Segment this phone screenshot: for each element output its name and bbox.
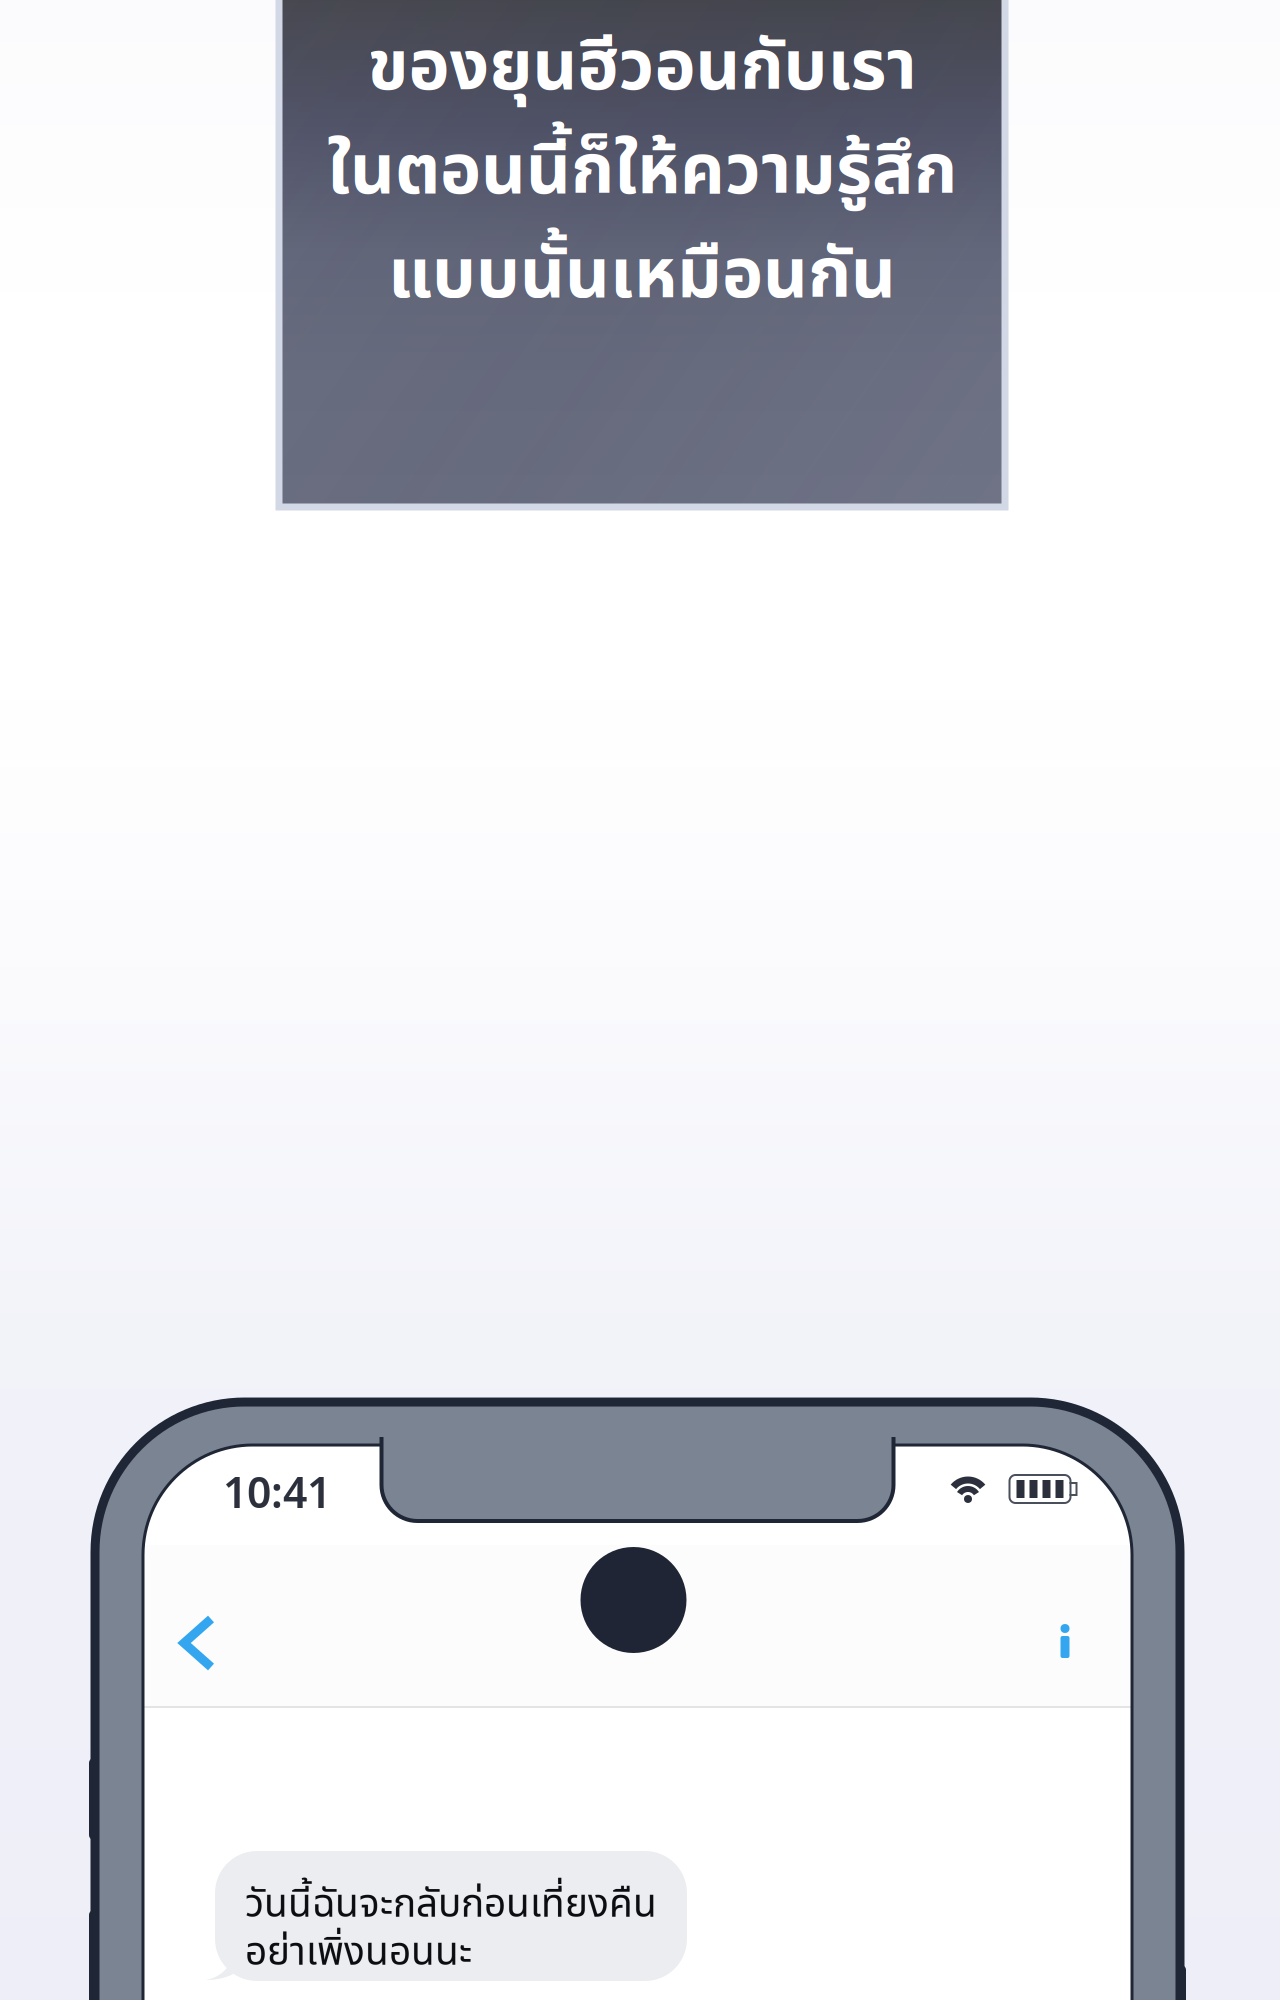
button[interactable]: Contact profile — [580, 1547, 686, 1653]
button[interactable]: Back — [149, 1583, 245, 1703]
button[interactable]: Conversation info — [1017, 1575, 1113, 1695]
staticText: วันนี้ฉันจะกลับก่อนเที่ยงคืน — [245, 1876, 657, 1934]
staticText: ในตอนนี้ก็ให้ความรู้สึก — [327, 120, 957, 224]
staticText: อย่าเพิ่งนอนนะ — [245, 1924, 472, 1982]
staticText: 10:41 — [223, 1463, 331, 1520]
staticText: ของยุนฮีวอนกับเรา — [367, 16, 916, 120]
staticText: แบบนั้นเหมือนกัน — [388, 224, 896, 328]
